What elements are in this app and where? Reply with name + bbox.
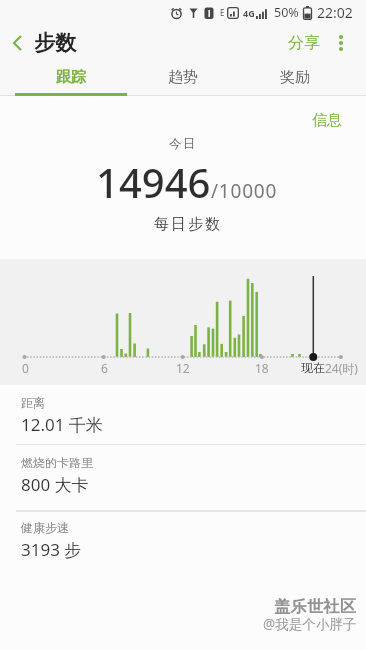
staticText: 0 (22, 360, 29, 376)
staticText: 奖励 (280, 68, 310, 87)
staticText: 信息 (312, 111, 342, 130)
staticText: 分享 (288, 33, 320, 53)
staticText: 18 (255, 360, 269, 376)
staticText: 24(时) (325, 360, 358, 376)
staticText: 现在 (301, 360, 325, 375)
staticText: 12 (176, 360, 190, 376)
staticText: 12.01 千米 (21, 413, 103, 436)
button[interactable]: 趋势 (127, 62, 239, 93)
staticText: 每日步数 (5, 215, 366, 234)
button[interactable]: 信息 (312, 111, 342, 130)
staticText: 14946 (96, 155, 211, 209)
staticText: 6 (101, 360, 108, 376)
staticText: 4G (243, 7, 255, 19)
staticText: 800 大卡 (21, 473, 89, 496)
button[interactable] (327, 24, 355, 62)
staticText: 3193 步 (21, 538, 82, 561)
button[interactable]: 分享 (281, 25, 327, 61)
button[interactable]: 跟踪 (15, 62, 127, 93)
button[interactable]: 燃烧的卡路里 (0, 455, 366, 496)
staticText: 今日 (0, 136, 366, 152)
staticText: 22:02 (317, 3, 353, 22)
staticText: 50% (274, 4, 299, 21)
staticText: 距离 (21, 395, 45, 410)
staticText: E (220, 7, 225, 18)
staticText: 燃烧的卡路里 (21, 455, 93, 470)
staticText: 跟踪 (56, 68, 86, 87)
staticText: 趋势 (168, 68, 198, 87)
button[interactable]: 健康步速 (0, 520, 366, 561)
staticText: /10000 (211, 178, 278, 204)
staticText: 健康步速 (21, 520, 69, 535)
staticText: @我是个小胖子 (263, 615, 357, 633)
staticText: 步数 (34, 30, 76, 56)
button[interactable] (0, 24, 34, 62)
button[interactable]: 奖励 (239, 62, 351, 93)
staticText: 盖乐世社区 (274, 597, 357, 617)
button[interactable]: 距离 (0, 395, 366, 436)
